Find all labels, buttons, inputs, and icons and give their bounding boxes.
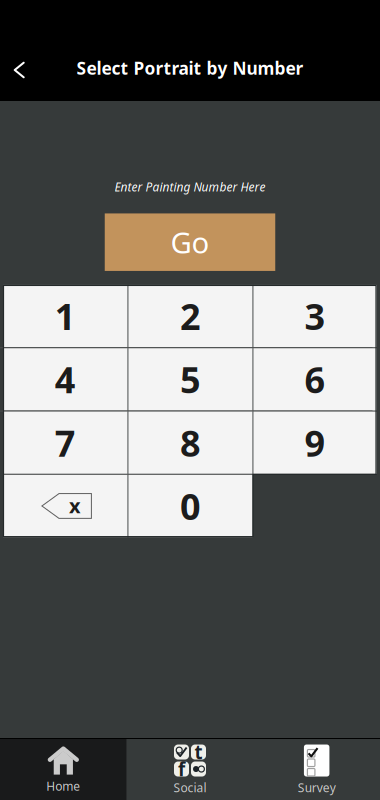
staticText: 0 xyxy=(180,482,201,530)
staticText: x xyxy=(69,492,81,519)
staticText: 8 xyxy=(180,419,201,467)
button[interactable]: Home xyxy=(0,739,127,800)
button[interactable]: 3 xyxy=(253,285,376,347)
staticText: Home xyxy=(46,778,80,794)
button[interactable]: Go xyxy=(105,213,275,271)
button[interactable]: 5 xyxy=(128,348,252,410)
button[interactable]: 4 xyxy=(3,348,127,410)
staticText: 3 xyxy=(304,292,325,340)
staticText: 4 xyxy=(55,355,76,403)
button[interactable]: 0 xyxy=(128,475,252,537)
staticText: f xyxy=(178,757,185,781)
staticText: t xyxy=(194,740,202,764)
staticText: 5 xyxy=(180,355,201,403)
staticText: 2 xyxy=(180,292,201,340)
staticText: 9 xyxy=(304,419,325,467)
button[interactable]: Survey xyxy=(253,739,380,800)
staticText: Social xyxy=(173,779,206,795)
button[interactable]: 8 xyxy=(128,411,252,474)
button[interactable]: 7 xyxy=(3,411,127,474)
staticText: Survey xyxy=(298,779,336,795)
button[interactable]: 1 xyxy=(3,285,127,347)
button[interactable]: Back xyxy=(0,47,35,88)
staticText: Go xyxy=(170,223,209,262)
button[interactable]: 9 xyxy=(253,411,376,474)
staticText: 7 xyxy=(55,419,76,467)
button[interactable]: Delete xyxy=(3,475,127,537)
button[interactable]: t xyxy=(127,739,253,800)
staticText: 1 xyxy=(55,292,76,340)
staticText: 6 xyxy=(304,355,325,403)
staticText: Select Portrait by Number xyxy=(76,56,303,79)
staticText: Enter Painting Number Here xyxy=(114,179,265,195)
button[interactable]: 6 xyxy=(253,348,376,410)
button[interactable]: 2 xyxy=(128,285,252,347)
